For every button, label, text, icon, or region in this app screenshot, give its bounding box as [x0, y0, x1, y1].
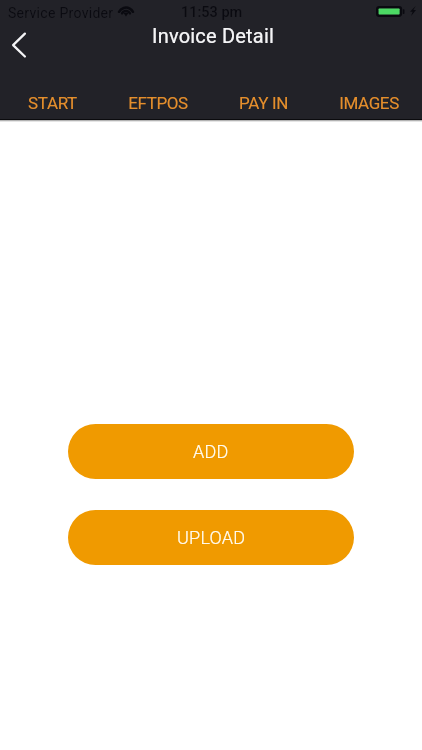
button[interactable]: EFTPOS [105, 87, 210, 118]
button[interactable]: ADD [68, 424, 354, 479]
staticText: PAY IN [239, 93, 288, 113]
button[interactable]: PAY IN [210, 87, 316, 118]
button[interactable]: IMAGES [316, 87, 422, 118]
staticText: Service Provider [8, 5, 114, 21]
button[interactable]: UPLOAD [68, 510, 354, 565]
staticText: UPLOAD [177, 527, 246, 548]
staticText: IMAGES [339, 93, 399, 113]
staticText: EFTPOS [128, 93, 188, 113]
staticText: START [28, 93, 77, 113]
staticText: 11:53 pm [181, 4, 243, 21]
staticText: ADD [193, 441, 229, 462]
button[interactable]: Back [0, 26, 41, 64]
button[interactable]: START [0, 87, 105, 118]
staticText: Invoice Detail [152, 24, 275, 47]
